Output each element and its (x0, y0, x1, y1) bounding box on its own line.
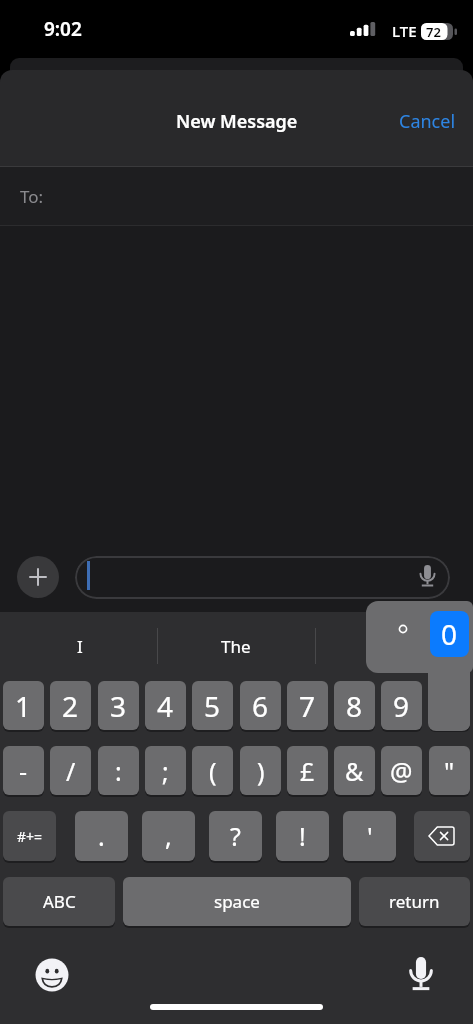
staticText: ' (367, 819, 373, 853)
staticText: 1 (15, 687, 32, 725)
button[interactable]: 1 (3, 681, 44, 730)
staticText: 4 (157, 687, 174, 725)
button[interactable]: 8 (334, 681, 375, 730)
button[interactable]: 5 (192, 681, 233, 730)
button[interactable] (34, 957, 69, 992)
staticText: Cancel (399, 109, 456, 134)
button[interactable] (17, 556, 59, 598)
button[interactable] (404, 952, 438, 996)
button[interactable]: 2 (50, 681, 91, 730)
staticText: ; (162, 754, 169, 788)
button[interactable]: Cancel (376, 98, 456, 144)
staticText: / (66, 754, 76, 788)
button[interactable]: ) (240, 746, 281, 795)
button[interactable]: space (123, 877, 351, 926)
staticText: I (77, 635, 83, 658)
button[interactable]: I (20, 620, 140, 672)
staticText: , (165, 819, 172, 853)
button[interactable] (0, 167, 473, 225)
staticText: The (221, 635, 251, 658)
staticText: 3 (110, 687, 127, 725)
staticText: 6 (252, 687, 269, 725)
button[interactable]: ; (145, 746, 186, 795)
button[interactable]: 0 (430, 611, 469, 657)
button[interactable]: 7 (287, 681, 328, 730)
button[interactable]: return (359, 877, 470, 926)
button[interactable]: , (142, 811, 195, 861)
button[interactable]: £ (287, 746, 328, 795)
staticText: 7 (299, 687, 316, 725)
staticText: ABC (43, 890, 76, 913)
staticText: 9:02 (44, 16, 82, 42)
staticText: #+= (17, 827, 43, 846)
staticText: & (345, 754, 364, 788)
button[interactable]: - (3, 746, 44, 795)
button[interactable]: 3 (98, 681, 139, 730)
button[interactable]: : (98, 746, 139, 795)
button[interactable] (414, 811, 470, 861)
button[interactable]: ! (276, 811, 329, 861)
staticText: 0 (441, 615, 458, 653)
button[interactable]: 6 (240, 681, 281, 730)
staticText: " (444, 754, 455, 788)
button[interactable]: & (334, 746, 375, 795)
staticText: return (389, 890, 440, 913)
staticText: LTE (392, 21, 417, 41)
button[interactable]: 0 (429, 681, 470, 730)
button[interactable]: ABC (3, 877, 115, 926)
staticText: £ (300, 754, 315, 788)
staticText: 2 (62, 687, 79, 725)
staticText: 5 (204, 687, 221, 725)
button[interactable]: / (50, 746, 91, 795)
staticText: New Message (176, 109, 298, 134)
staticText: : (115, 754, 122, 788)
staticText: 9 (393, 687, 410, 725)
button[interactable]: " (429, 746, 470, 795)
staticText: ( (209, 754, 217, 788)
staticText: - (19, 754, 28, 788)
button[interactable]: . (75, 811, 128, 861)
staticText: ! (299, 819, 306, 853)
button[interactable]: #+= (3, 811, 56, 861)
button[interactable]: 4 (145, 681, 186, 730)
button[interactable]: @ (381, 746, 422, 795)
button[interactable]: ' (343, 811, 396, 861)
button[interactable]: 9 (381, 681, 422, 730)
staticText: ) (257, 754, 265, 788)
button[interactable]: The (176, 620, 296, 672)
button[interactable]: ? (209, 811, 262, 861)
staticText: 8 (346, 687, 363, 725)
button[interactable] (75, 556, 450, 599)
staticText: space (214, 890, 260, 913)
staticText: ? (230, 819, 241, 853)
staticText: To: (20, 185, 44, 208)
staticText: . (98, 819, 105, 853)
button[interactable]: ( (192, 746, 233, 795)
staticText: 72 (426, 23, 441, 41)
staticText: @ (390, 754, 413, 788)
